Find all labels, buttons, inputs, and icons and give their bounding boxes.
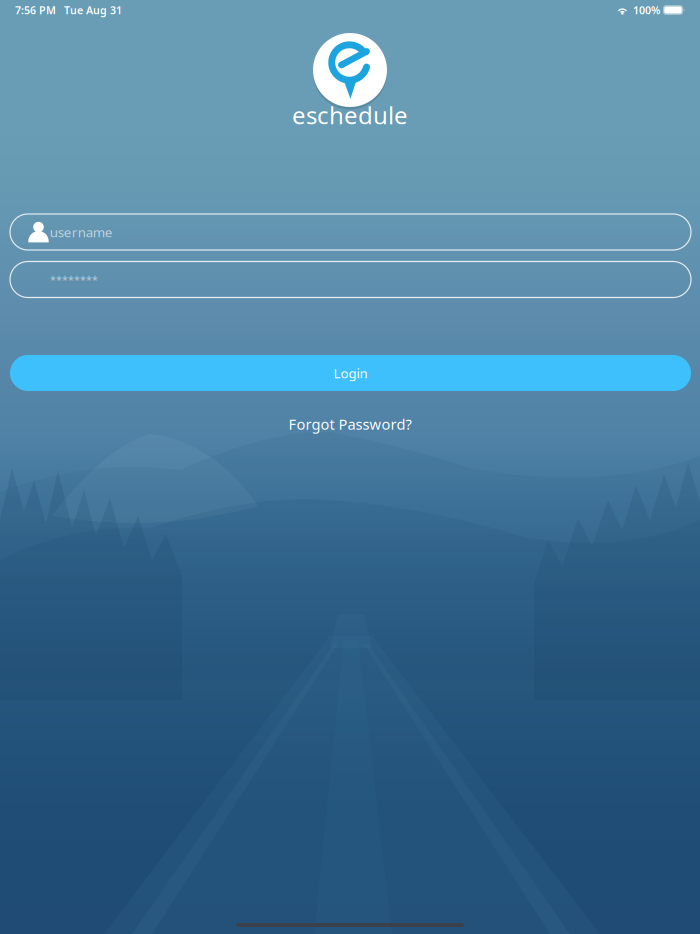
staticText: Tue Aug 31 [64,3,122,17]
staticText: ******** [50,272,98,287]
button[interactable]: Login [10,355,691,391]
button[interactable]: Forgot Password? [274,406,425,442]
staticText: Login [333,364,367,382]
staticText: 7:56 PM [15,3,56,17]
staticText: username [50,223,113,241]
staticText: eschedule [292,99,408,131]
button[interactable]: username [10,214,691,250]
staticText: 100% [633,3,660,17]
staticText: Forgot Password? [288,414,411,434]
button[interactable]: ******** [10,261,691,297]
